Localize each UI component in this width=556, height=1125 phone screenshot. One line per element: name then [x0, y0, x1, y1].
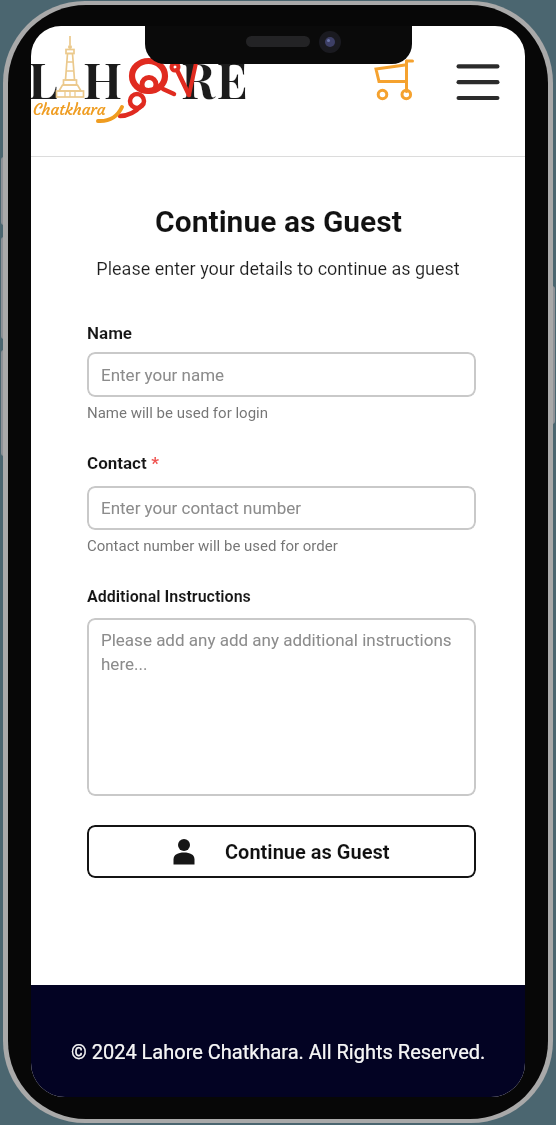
staticText: Name — [87, 323, 133, 343]
staticText: Enter your contact number — [101, 498, 302, 518]
staticText: Name will be used for login — [87, 404, 268, 422]
staticText: © 2024 Lahore Chatkhara. All Rights Rese… — [71, 1040, 486, 1063]
staticText: Please add any add any additional instru… — [101, 630, 462, 674]
staticText: Continue as Guest — [225, 840, 390, 863]
button[interactable]: Please add any add any additional instru… — [87, 618, 476, 796]
staticText: Please enter your details to continue as… — [96, 258, 460, 279]
staticText: RE — [181, 46, 249, 111]
button[interactable]: L — [31, 26, 261, 136]
staticText: * — [147, 453, 159, 473]
button[interactable]: Enter your name — [87, 352, 476, 397]
button[interactable]: Enter your contact number — [87, 486, 476, 530]
staticText: L — [31, 46, 58, 111]
staticText: Enter your name — [101, 365, 225, 385]
button[interactable] — [451, 56, 505, 108]
staticText: H — [83, 46, 123, 111]
staticText: Additional Instructions — [87, 587, 251, 606]
staticText: Contact — [87, 453, 147, 473]
button[interactable] — [369, 54, 421, 106]
staticText: Chatkhara — [33, 99, 106, 119]
staticText: Contact number will be used for order — [87, 537, 338, 555]
button[interactable]: Continue as Guest — [87, 825, 476, 878]
staticText: Continue as Guest — [155, 204, 402, 239]
